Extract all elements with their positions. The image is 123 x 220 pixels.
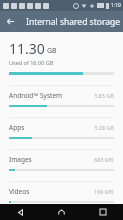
staticText: 3.85 GB (94, 92, 114, 99)
button[interactable]: Images (0, 144, 123, 176)
staticText: 683 MB (94, 156, 114, 163)
staticText: 3.28 GB (94, 124, 114, 131)
staticText: Images (9, 155, 32, 164)
staticText: Apps (9, 123, 25, 132)
button[interactable]: Apps (0, 112, 123, 144)
staticText: Internal shared storage (26, 16, 121, 28)
button[interactable]: Android™ System (0, 80, 123, 112)
staticText: 11.30 (9, 39, 45, 58)
staticText: Videos (9, 187, 30, 196)
staticText: GB (47, 46, 57, 56)
button[interactable]: Home (41, 204, 82, 220)
staticText: 1:19 (111, 2, 121, 9)
button[interactable]: Back (0, 204, 41, 220)
button[interactable]: Recent apps (82, 204, 123, 220)
staticText: Android™ System (9, 91, 63, 100)
button[interactable]: Back (0, 11, 21, 32)
staticText: 169 MB (94, 188, 114, 195)
staticText: Used of 16.00 GB (9, 59, 54, 66)
button[interactable]: Videos (0, 176, 123, 208)
button[interactable]: Audio (0, 208, 123, 220)
